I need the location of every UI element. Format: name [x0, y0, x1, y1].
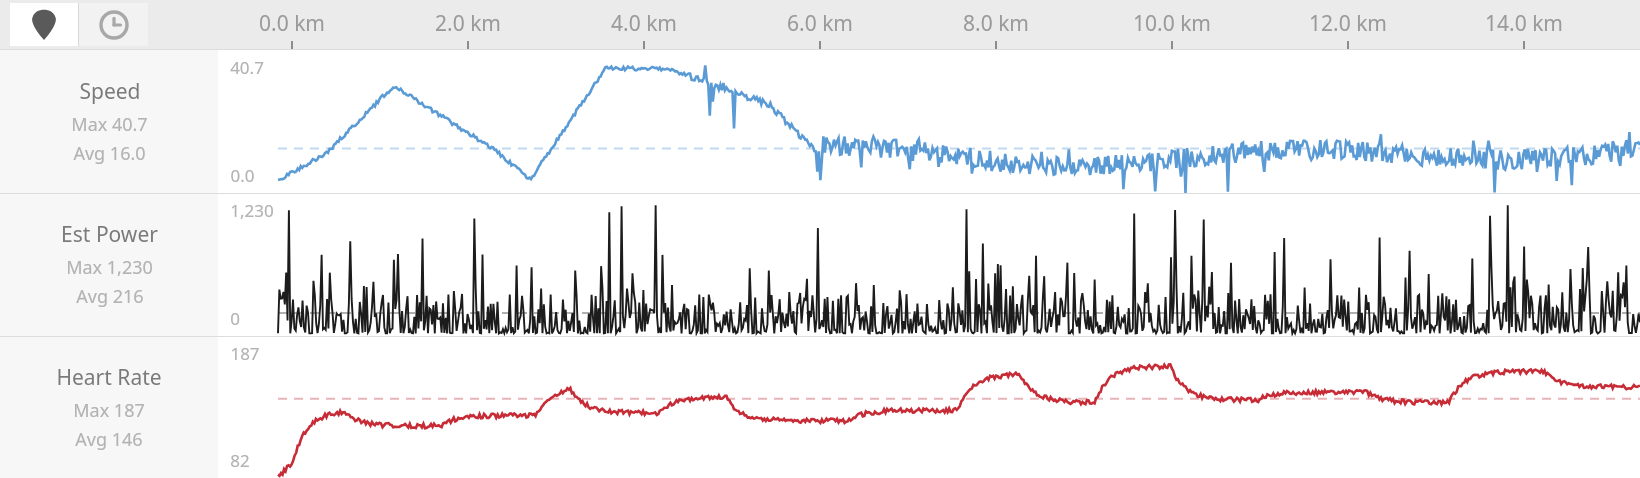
staticText: 0.0 km — [259, 9, 325, 38]
button[interactable]: Est Power — [0, 193, 218, 336]
staticText: 82 — [230, 449, 250, 472]
staticText: Est Power — [61, 220, 158, 249]
staticText: 14.0 km — [1485, 9, 1563, 38]
staticText: 1,230 — [230, 199, 274, 222]
staticText: 187 — [230, 342, 260, 365]
staticText: 4.0 km — [611, 9, 677, 38]
staticText: 10.0 km — [1133, 9, 1211, 38]
button[interactable]: Show map — [10, 3, 78, 46]
staticText: 12.0 km — [1309, 9, 1387, 38]
button[interactable]: Show time — [79, 3, 148, 46]
staticText: Speed — [79, 77, 141, 106]
button[interactable]: Speed — [0, 50, 218, 193]
staticText: Avg 216 — [76, 284, 144, 309]
staticText: 40.7 — [230, 56, 264, 79]
staticText: 0 — [230, 307, 240, 330]
staticText: Heart Rate — [56, 363, 162, 392]
staticText: 2.0 km — [435, 9, 501, 38]
staticText: 6.0 km — [787, 9, 853, 38]
staticText: Avg 16.0 — [73, 141, 146, 166]
staticText: 0.0 — [230, 164, 255, 187]
staticText: Max 40.7 — [71, 112, 148, 137]
staticText: Max 1,230 — [66, 255, 153, 280]
button[interactable]: Heart Rate — [0, 336, 218, 478]
staticText: Avg 146 — [75, 427, 143, 452]
staticText: Max 187 — [73, 398, 145, 423]
staticText: 8.0 km — [963, 9, 1029, 38]
